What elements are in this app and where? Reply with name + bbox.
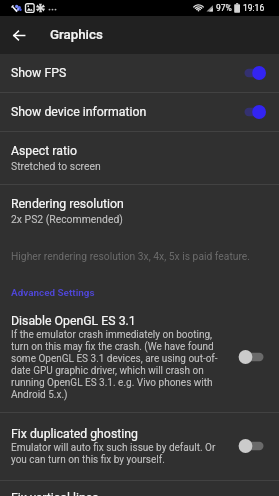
staticText: If the emulator crash immediately on boo… bbox=[11, 328, 222, 400]
staticText: Higher rendering resolution 3x, 4x, 5x i… bbox=[11, 250, 250, 262]
staticText: Rendering resolution bbox=[11, 197, 124, 211]
button[interactable]: Disable OpenGL ES 3.1 bbox=[0, 314, 279, 400]
button[interactable]: Show FPS bbox=[0, 54, 279, 92]
staticText: 19:16 bbox=[243, 3, 265, 13]
button[interactable]: Back bbox=[0, 16, 38, 54]
staticText: Show device information bbox=[11, 105, 236, 119]
staticText: 2x PS2 (Recommended) bbox=[11, 213, 123, 225]
staticText: Emulator will auto fix such issue by def… bbox=[11, 441, 222, 465]
staticText: Disable OpenGL ES 3.1 bbox=[11, 314, 136, 328]
button[interactable]: Aspect ratio bbox=[0, 132, 279, 184]
staticText: 97% bbox=[216, 3, 232, 13]
button[interactable]: Enabled toggle bbox=[236, 61, 270, 85]
button[interactable]: Enabled toggle bbox=[236, 100, 270, 124]
staticText: Show FPS bbox=[11, 66, 236, 80]
staticText: Aspect ratio bbox=[11, 144, 77, 158]
button[interactable]: Disabled toggle bbox=[236, 345, 270, 369]
staticText: Advanced Settings bbox=[11, 287, 95, 299]
staticText: Stretched to screen bbox=[11, 160, 101, 172]
button[interactable]: Show device information bbox=[0, 93, 279, 131]
staticText: Graphics bbox=[50, 27, 103, 43]
button[interactable]: Fix vertical lines bbox=[0, 491, 279, 496]
button[interactable]: Disabled toggle bbox=[236, 434, 270, 458]
staticText: Fix duplicated ghosting bbox=[11, 427, 138, 441]
button[interactable]: Advanced Settings bbox=[0, 287, 279, 299]
button[interactable]: Rendering resolution bbox=[0, 185, 279, 237]
staticText: Fix vertical lines bbox=[11, 491, 270, 496]
button[interactable]: Fix duplicated ghosting bbox=[0, 427, 279, 465]
